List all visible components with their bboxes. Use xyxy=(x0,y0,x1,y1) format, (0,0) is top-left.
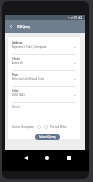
button[interactable]: Gross Inception xyxy=(12,125,41,129)
staticText: Address: xyxy=(12,41,24,45)
button[interactable]: Back xyxy=(22,154,30,162)
staticText: Gross Inception xyxy=(12,125,35,129)
button[interactable]: Recent apps xyxy=(65,154,73,162)
button[interactable]: Address: xyxy=(12,39,76,55)
staticText: 0000 1A63 xyxy=(12,93,73,97)
staticText: Birla Sun Life Mutual Fund xyxy=(12,77,73,81)
button[interactable]: Folio: xyxy=(12,87,76,103)
button[interactable]: Submit Query xyxy=(35,134,60,140)
staticText: SOA Query xyxy=(17,25,30,28)
button[interactable]: Period Wise xyxy=(44,125,67,129)
staticText: Folio: xyxy=(12,89,19,93)
button[interactable]: Back xyxy=(5,20,17,33)
button[interactable]: Client: xyxy=(12,55,76,71)
button[interactable]: Home xyxy=(43,154,51,162)
staticText: 11:42 xyxy=(74,16,83,20)
staticText: Client: xyxy=(12,57,21,61)
staticText: Submit Query xyxy=(39,135,56,139)
button[interactable]: Reset xyxy=(12,105,20,109)
staticText: Plan: xyxy=(12,73,19,77)
staticText: Rajendra S. Patel, Umrajwad xyxy=(12,45,73,49)
staticText: Period Wise xyxy=(50,125,67,129)
button[interactable]: Plan: xyxy=(12,71,76,87)
staticText: Active all xyxy=(12,61,73,65)
staticText: Reset xyxy=(12,105,20,109)
